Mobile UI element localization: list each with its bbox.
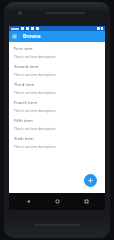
- staticText: Fourth item: [14, 100, 38, 106]
- staticText: This is an item description: [14, 54, 56, 59]
- staticText: This is an item description: [14, 90, 56, 95]
- staticText: This is an item description: [14, 72, 56, 77]
- button[interactable]: Back: [18, 193, 38, 210]
- button[interactable]: Fourth item: [9, 96, 105, 114]
- button[interactable]: Add: [84, 174, 97, 187]
- staticText: This is an item description: [14, 144, 56, 149]
- button[interactable]: First item: [9, 42, 105, 60]
- button[interactable]: Home: [47, 193, 67, 210]
- button[interactable]: Fifth item: [9, 114, 105, 132]
- staticText: Third item: [14, 82, 35, 88]
- button[interactable]: Second item: [9, 60, 105, 78]
- button[interactable]: Third item: [9, 78, 105, 96]
- button[interactable]: Open navigation drawer: [9, 31, 20, 42]
- button[interactable]: Recents: [76, 193, 96, 210]
- staticText: First item: [14, 46, 33, 52]
- staticText: Browse: [23, 33, 41, 40]
- staticText: Second item: [14, 64, 39, 70]
- staticText: Sixth item: [14, 136, 34, 142]
- button[interactable]: Sixth item: [9, 132, 105, 150]
- staticText: This is an item description: [14, 126, 56, 131]
- staticText: This is an item description: [14, 108, 56, 113]
- staticText: Fifth item: [14, 118, 33, 124]
